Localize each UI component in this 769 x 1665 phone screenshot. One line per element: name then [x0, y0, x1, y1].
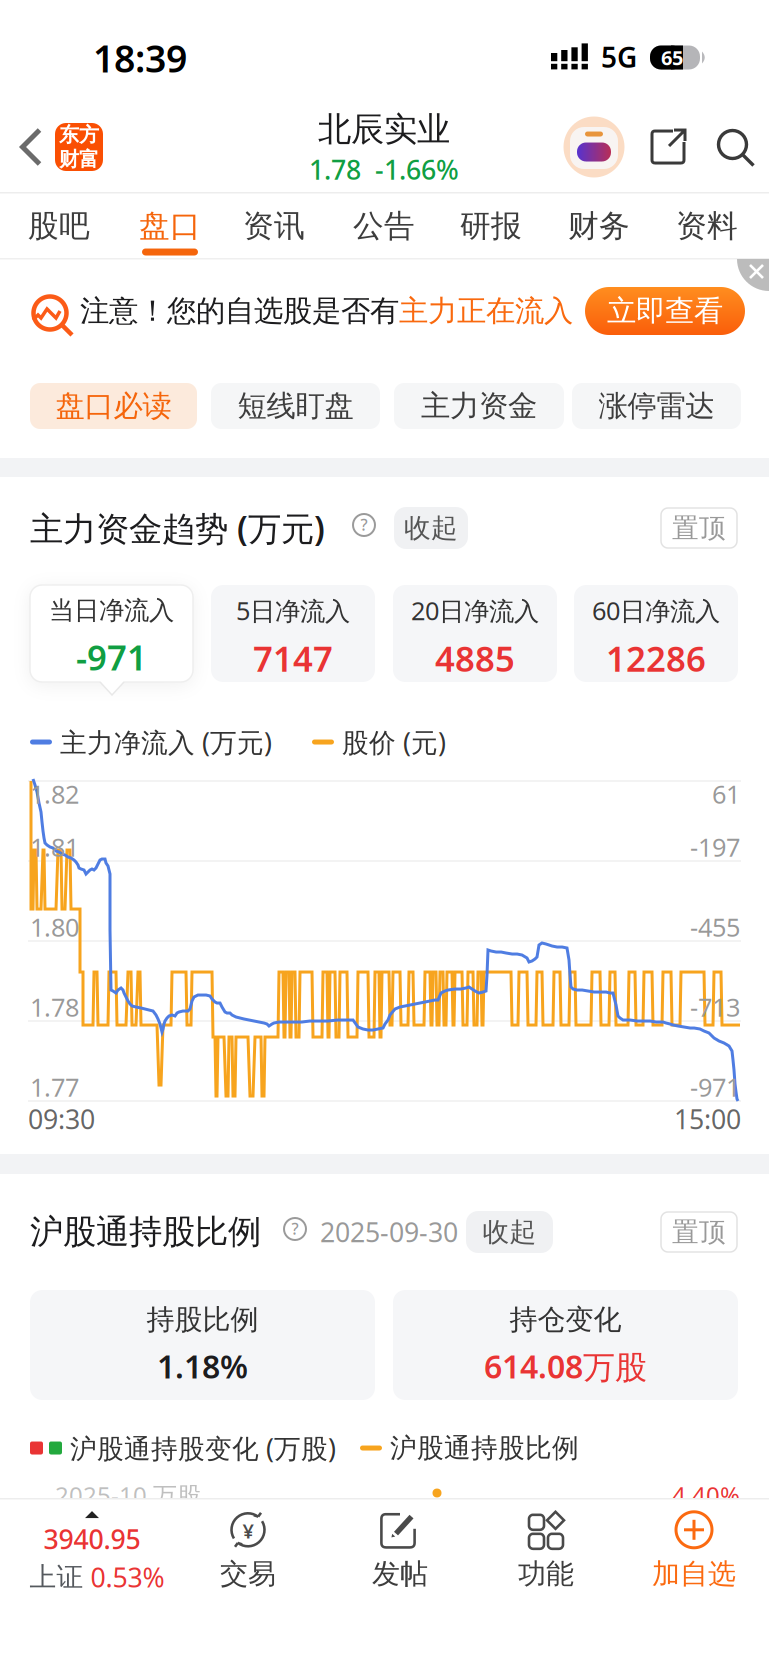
- staticText: -971: [690, 1070, 740, 1104]
- staticText: 资讯: [243, 207, 305, 245]
- staticText: 功能: [518, 1557, 574, 1591]
- button[interactable]: 加自选: [629, 1495, 759, 1605]
- button[interactable]: ¥: [188, 1495, 308, 1605]
- staticText: 资料: [676, 207, 738, 245]
- button[interactable]: 5日净流入: [211, 585, 375, 682]
- button[interactable]: 短线盯盘: [211, 383, 380, 429]
- button[interactable]: 公告: [332, 194, 436, 258]
- staticText: 立即查看: [607, 293, 723, 329]
- staticText: 1.78 -1.66%: [309, 152, 459, 187]
- staticText: -455: [690, 910, 740, 944]
- staticText: 3940.95: [43, 1521, 140, 1556]
- button[interactable]: 盘口: [118, 194, 222, 258]
- staticText: 1.77: [30, 1070, 79, 1104]
- staticText: 1.80: [30, 910, 79, 944]
- staticText: ¥: [242, 1517, 253, 1544]
- staticText: 主力资金: [421, 388, 537, 424]
- button[interactable]: 财务: [547, 194, 651, 258]
- button[interactable]: 3940.95: [2, 1501, 192, 1605]
- staticText: 主力净流入 (万元): [60, 724, 272, 760]
- staticText: 当日净流入: [49, 595, 174, 626]
- staticText: 置顶: [672, 1216, 726, 1248]
- staticText: 沪股通持股比例: [390, 1432, 579, 1464]
- staticText: 北辰实业: [318, 109, 450, 150]
- staticText: 置顶: [672, 512, 726, 544]
- staticText: 4885: [435, 635, 515, 681]
- staticText: 涨停雷达: [598, 388, 714, 424]
- button[interactable]: 立即查看: [585, 287, 745, 335]
- staticText: 研报: [460, 207, 522, 245]
- button[interactable]: 持股比例: [30, 1290, 375, 1400]
- staticText: 持仓变化: [509, 1303, 621, 1337]
- button[interactable]: 资料: [655, 194, 759, 258]
- staticText: 1.78: [30, 990, 79, 1024]
- staticText: 09:30: [28, 1101, 95, 1137]
- button[interactable]: 60日净流入: [574, 585, 738, 682]
- button[interactable]: Close: [737, 259, 769, 291]
- staticText: 财务: [568, 207, 630, 245]
- button[interactable]: Search: [715, 127, 756, 168]
- staticText: 61: [712, 777, 740, 811]
- staticText: 18:39: [93, 33, 187, 83]
- staticText: ?: [360, 514, 367, 535]
- staticText: -971: [76, 634, 147, 680]
- staticText: 20日净流入: [411, 594, 539, 627]
- staticText: 主力正在流入: [399, 293, 573, 329]
- staticText: 东方: [59, 122, 99, 147]
- staticText: 上证: [29, 1561, 83, 1594]
- staticText: 4.40%: [672, 1479, 740, 1511]
- staticText: 沪股通持股变化 (万股): [70, 1430, 336, 1466]
- staticText: 持股比例: [146, 1303, 258, 1337]
- button[interactable]: 盘口必读: [30, 383, 197, 429]
- staticText: 1.18%: [157, 1345, 248, 1387]
- button[interactable]: 当日净流入: [30, 585, 193, 682]
- button[interactable]: 主力资金: [394, 383, 564, 429]
- staticText: 收起: [482, 1216, 536, 1248]
- button[interactable]: Share: [649, 128, 687, 166]
- staticText: 60日净流入: [592, 594, 720, 627]
- staticText: 交易: [220, 1557, 276, 1591]
- staticText: 收起: [404, 512, 458, 544]
- staticText: 614.08万股: [484, 1345, 647, 1387]
- staticText: 股吧: [28, 207, 90, 245]
- staticText: 盘口: [139, 207, 201, 245]
- staticText: 发帖: [372, 1557, 428, 1591]
- staticText: ?: [291, 1218, 298, 1239]
- button[interactable]: 资讯: [222, 194, 326, 258]
- staticText: 0.53%: [90, 1559, 164, 1595]
- button[interactable]: 发帖: [340, 1495, 460, 1605]
- staticText: 股价 (元): [342, 724, 446, 760]
- staticText: 加自选: [652, 1557, 736, 1591]
- staticText: 短线盯盘: [237, 388, 353, 424]
- staticText: 12286: [606, 635, 706, 681]
- staticText: 1.81: [30, 830, 79, 864]
- button[interactable]: 置顶: [661, 508, 737, 548]
- staticText: 注意！您的自选股是否有: [80, 293, 399, 329]
- staticText: 公告: [353, 207, 415, 245]
- button[interactable]: 收起: [466, 1211, 553, 1253]
- staticText: 7147: [253, 635, 333, 681]
- staticText: 65: [661, 44, 683, 71]
- button[interactable]: 股吧: [7, 194, 111, 258]
- button[interactable]: 涨停雷达: [572, 383, 741, 429]
- staticText: 财富: [59, 147, 99, 172]
- button[interactable]: Back: [11, 122, 51, 172]
- button[interactable]: 持仓变化: [393, 1290, 738, 1400]
- staticText: 5G: [601, 38, 637, 76]
- staticText: 1.82: [30, 777, 79, 811]
- staticText: 主力资金趋势 (万元): [30, 506, 325, 550]
- staticText: -713: [690, 990, 740, 1024]
- button[interactable]: 置顶: [661, 1212, 737, 1252]
- button[interactable]: 功能: [486, 1495, 606, 1605]
- button[interactable]: 东方财富: [55, 122, 103, 171]
- staticText: 沪股通持股比例: [30, 1211, 261, 1252]
- staticText: 2025-09-30: [320, 1214, 458, 1250]
- button[interactable]: 20日净流入: [393, 585, 557, 682]
- button[interactable]: 注意！您的自选股是否有: [23, 283, 573, 339]
- button[interactable]: 研报: [439, 194, 543, 258]
- staticText: 2025-10 万股: [55, 1479, 201, 1511]
- button[interactable]: 收起: [394, 507, 468, 549]
- staticText: 盘口必读: [55, 388, 171, 424]
- button[interactable]: 智能助手: [563, 116, 624, 177]
- staticText: 15:00: [674, 1101, 741, 1137]
